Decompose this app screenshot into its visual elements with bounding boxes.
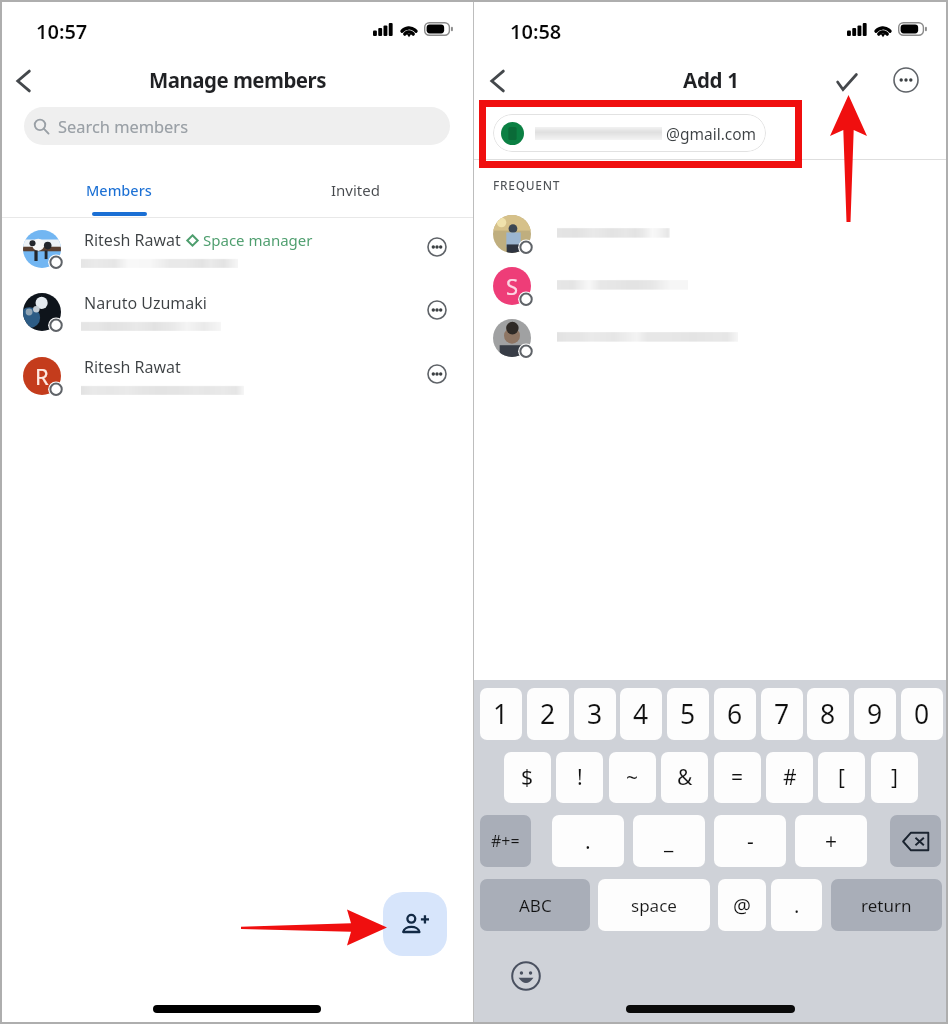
staticText: 6 [727,696,743,732]
button[interactable]: Confirm [828,63,865,100]
button[interactable]: ~ [609,752,656,803]
button[interactable]: & [661,752,708,803]
staticText: @gmail.com [666,123,757,144]
button[interactable]: Invited [237,176,474,204]
button[interactable]: $ [504,752,551,803]
button[interactable]: ! [556,752,603,803]
button[interactable]: Back [477,61,517,101]
staticText: 8 [820,696,836,732]
button[interactable]: Ritesh Rawat [0,219,474,281]
staticText: Add 1 [683,66,739,94]
button[interactable]: _ [633,815,705,867]
button[interactable]: 7 [761,688,803,740]
staticText: & [677,763,693,792]
button[interactable]: + [795,815,867,867]
staticText: 7 [774,696,790,732]
staticText: space [631,894,677,917]
button[interactable]: S [474,267,948,315]
button[interactable]: R [0,346,474,408]
staticText: Search members [58,115,188,137]
staticText: Ritesh Rawat [84,356,181,378]
staticText: + [825,827,838,856]
staticText: ! [577,763,583,792]
button[interactable]: Members [0,176,237,204]
button[interactable]: #+= [480,815,531,867]
button[interactable] [474,215,948,263]
staticText: Naruto Uzumaki [84,292,207,314]
button[interactable]: 3 [574,688,616,740]
staticText: FREQUENT [493,177,561,193]
button[interactable]: ABC [480,879,590,931]
staticText: 5 [680,696,696,732]
staticText: 4 [633,696,649,732]
button[interactable]: 1 [480,688,522,740]
staticText: 10:57 [36,18,88,45]
staticText: 9 [867,696,883,732]
button[interactable]: 4 [620,688,662,740]
staticText: S [506,271,519,301]
button[interactable] [474,319,948,367]
staticText: Space manager [203,230,313,250]
staticText: # [783,763,797,792]
button[interactable]: 8 [807,688,849,740]
button[interactable]: More options [424,297,450,323]
staticText: ~ [626,763,639,792]
staticText: 10:58 [510,18,562,45]
button[interactable]: @gmail.com [493,114,766,152]
button[interactable]: Emoji keyboard [511,961,541,991]
staticText: [ [838,763,845,792]
staticText: 1 [493,696,509,732]
button[interactable]: 9 [854,688,896,740]
button[interactable]: Add members [383,892,447,956]
button[interactable]: More options [891,65,921,95]
button[interactable]: [ [818,752,865,803]
button[interactable]: 5 [667,688,709,740]
staticText: 2 [540,696,556,732]
button[interactable]: Backspace [890,815,941,867]
button[interactable]: ] [871,752,918,803]
staticText: return [861,894,912,917]
button[interactable]: @ [718,879,766,931]
staticText: Invited [331,180,380,200]
staticText: 3 [587,696,603,732]
staticText: Members [86,180,152,200]
button[interactable]: More options [424,361,450,387]
staticText: Manage members [149,66,326,94]
button[interactable]: - [714,815,786,867]
button[interactable]: 6 [714,688,756,740]
staticText: ABC [519,894,552,917]
staticText: - [747,827,754,856]
staticText: $ [521,763,534,792]
button[interactable]: # [766,752,813,803]
button[interactable]: Search members [24,107,450,145]
staticText: @ [733,892,751,919]
button[interactable]: Back [3,61,43,101]
staticText: Ritesh Rawat [84,229,181,251]
staticText: R [35,361,49,391]
staticText: 0 [914,696,930,732]
staticText: . [585,827,591,856]
staticText: . [794,892,800,919]
button[interactable]: More options [424,234,450,260]
button[interactable]: = [714,752,761,803]
button[interactable]: return [831,879,942,931]
staticText: _ [664,827,674,856]
button[interactable]: . [771,879,822,931]
button[interactable]: Naruto Uzumaki [0,282,474,344]
button[interactable]: space [598,879,710,931]
button[interactable]: . [552,815,624,867]
button[interactable]: 2 [527,688,569,740]
staticText: = [731,763,744,792]
staticText: #+= [491,830,520,852]
staticText: ] [891,763,898,792]
button[interactable]: 0 [901,688,943,740]
